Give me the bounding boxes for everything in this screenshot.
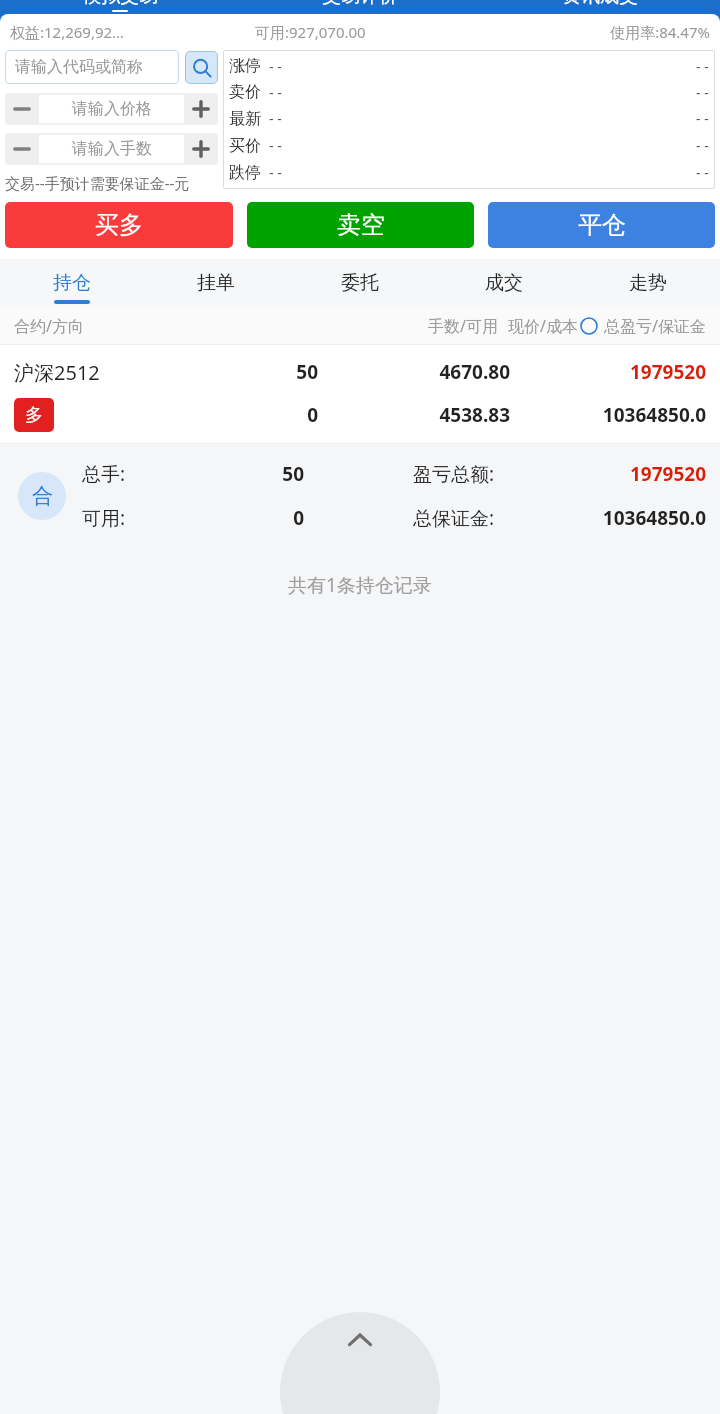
button[interactable]: 卖空	[247, 202, 474, 248]
staticText: 10364850.0	[510, 402, 706, 428]
staticText: 跌停	[229, 163, 261, 183]
staticText: 最新	[229, 109, 261, 129]
staticText: 沪深2512	[14, 359, 164, 386]
button[interactable]: 持仓	[0, 259, 144, 307]
staticText: 0	[164, 402, 318, 428]
staticText: 1979520	[494, 461, 706, 487]
staticText: 可用:927,070.00	[255, 22, 488, 42]
staticText: 4538.83	[318, 402, 510, 428]
button[interactable]: 搜索	[185, 51, 218, 84]
staticText: 委托	[341, 271, 379, 295]
staticText: 1979520	[510, 359, 706, 385]
staticText: 请输入价格	[72, 99, 152, 119]
staticText: 买价	[229, 136, 261, 156]
button[interactable]: 交易评价	[240, 0, 480, 30]
button[interactable]: 模拟交易	[0, 0, 240, 30]
staticText: - -	[269, 163, 282, 182]
staticText: 交易评价	[322, 0, 398, 8]
button[interactable]: 展开	[280, 1312, 440, 1414]
staticText: 资讯成交	[562, 0, 638, 8]
staticText: 可用:	[82, 505, 228, 531]
staticText: 请输入代码或简称	[15, 57, 143, 77]
staticText: 总盈亏/保证金	[604, 315, 706, 337]
button[interactable]: 增加	[184, 133, 218, 165]
staticText: 10364850.0	[494, 505, 706, 531]
staticText: 多	[25, 404, 43, 427]
button[interactable]: 请输入手数	[39, 135, 184, 163]
staticText: 模拟交易	[82, 0, 158, 8]
button[interactable]: 走势	[576, 259, 720, 307]
button[interactable]: 沪深2512	[0, 351, 720, 437]
staticText: 涨停	[229, 56, 261, 76]
staticText: 平仓	[578, 210, 626, 240]
staticText: - -	[696, 163, 709, 182]
staticText: - -	[696, 109, 709, 128]
staticText: - -	[269, 109, 282, 128]
button[interactable]: 请输入价格	[39, 95, 184, 123]
staticText: 使用率:84.47%	[488, 22, 710, 42]
staticText: 50	[164, 359, 318, 385]
staticText: 50	[228, 461, 304, 487]
staticText: 卖价	[229, 82, 261, 102]
staticText: 卖空	[337, 210, 385, 240]
button[interactable]: 增加	[184, 93, 218, 125]
staticText: 总手:	[82, 461, 228, 487]
staticText: 挂单	[197, 271, 235, 295]
staticText: 手数/可用	[428, 315, 498, 337]
staticText: 成交	[485, 271, 523, 295]
staticText: 走势	[629, 271, 667, 295]
button[interactable]: 资讯成交	[480, 0, 720, 30]
staticText: 持仓	[53, 271, 91, 295]
button[interactable]: 委托	[288, 259, 432, 307]
staticText: 4670.80	[318, 359, 510, 385]
button[interactable]: 请输入代码或简称	[5, 50, 179, 84]
staticText: 共有1条持仓记录	[288, 572, 432, 598]
staticText: 现价/成本	[508, 315, 578, 337]
staticText: - -	[269, 83, 282, 102]
button[interactable]: 成交	[432, 259, 576, 307]
staticText: 买多	[95, 210, 143, 240]
staticText: 盈亏总额:	[304, 461, 494, 487]
staticText: - -	[269, 57, 282, 76]
button[interactable]: 减少	[5, 93, 39, 125]
button[interactable]: 减少	[5, 133, 39, 165]
button[interactable]: 平仓	[488, 202, 715, 248]
staticText: - -	[696, 83, 709, 102]
staticText: 请输入手数	[72, 139, 152, 159]
staticText: 合约/方向	[14, 315, 84, 337]
staticText: 交易--手预计需要保证金--元	[5, 173, 190, 193]
staticText: 权益:12,269,92…	[10, 22, 255, 42]
staticText: - -	[696, 136, 709, 155]
staticText: 总保证金:	[304, 505, 494, 531]
button[interactable]: 挂单	[144, 259, 288, 307]
staticText: 0	[228, 505, 304, 531]
staticText: - -	[269, 136, 282, 155]
staticText: 合	[32, 483, 53, 509]
staticText: - -	[696, 57, 709, 76]
button[interactable]: 买多	[5, 202, 233, 248]
